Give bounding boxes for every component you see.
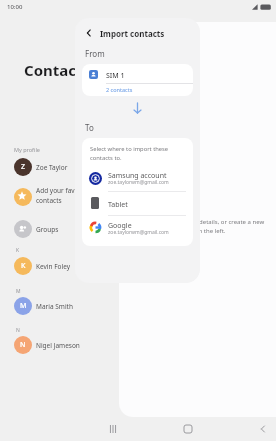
staticText: Zoe Taylor bbox=[36, 163, 68, 172]
button[interactable]: Add your favourite contacts bbox=[14, 184, 133, 214]
staticText: N bbox=[20, 340, 26, 350]
staticText: Select a contact to see details, or crea… bbox=[135, 218, 265, 235]
button[interactable]: SIM 1 bbox=[82, 64, 193, 96]
button[interactable]: K bbox=[14, 256, 133, 276]
staticText: Groups bbox=[36, 225, 59, 234]
staticText: Import contacts bbox=[100, 28, 165, 39]
staticText: zoe.taylorwm@gmail.com bbox=[108, 229, 169, 236]
button[interactable]: Home bbox=[176, 417, 200, 441]
staticText: Z bbox=[21, 162, 26, 172]
staticText: Nigel Jameson bbox=[36, 341, 80, 350]
staticText: M bbox=[16, 288, 21, 295]
button[interactable]: Samsung account bbox=[82, 166, 193, 192]
staticText: 2 contacts bbox=[106, 86, 133, 93]
staticText: 10:00 bbox=[7, 3, 23, 11]
staticText: Contacts bbox=[24, 60, 91, 80]
staticText: Select where to import these contacts to… bbox=[90, 145, 186, 161]
staticText: My profile bbox=[14, 146, 40, 153]
button[interactable]: Google bbox=[82, 216, 193, 242]
staticText: To bbox=[85, 122, 94, 133]
staticText: K bbox=[16, 247, 20, 254]
button[interactable]: N bbox=[14, 335, 133, 355]
staticText: M bbox=[20, 301, 27, 311]
staticText: Samsung account bbox=[108, 171, 167, 181]
staticText: Google bbox=[108, 221, 132, 231]
button[interactable]: Groups bbox=[14, 220, 133, 238]
button[interactable]: M bbox=[14, 296, 133, 316]
staticText: zoe.taylorwm@gmail.com bbox=[108, 179, 169, 186]
button[interactable]: Back bbox=[81, 25, 97, 41]
staticText: SIM 1 bbox=[106, 71, 125, 81]
button[interactable]: Back bbox=[251, 417, 275, 441]
button[interactable]: Recents bbox=[101, 417, 125, 441]
staticText: N bbox=[16, 327, 20, 334]
staticText: Add your favourite contacts bbox=[36, 186, 93, 205]
button[interactable]: Tablet bbox=[82, 192, 193, 216]
staticText: Maria Smith bbox=[36, 302, 73, 311]
staticText: From bbox=[85, 48, 105, 59]
staticText: Tablet bbox=[108, 200, 128, 210]
staticText: Kevin Foley bbox=[36, 262, 71, 271]
staticText: K bbox=[21, 261, 26, 271]
button[interactable]: Z bbox=[14, 157, 133, 177]
